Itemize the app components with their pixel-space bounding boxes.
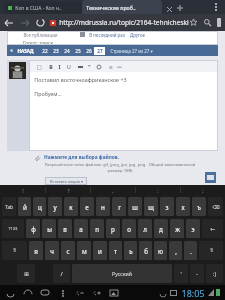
button[interactable]: More xyxy=(58,288,68,298)
button[interactable]: - xyxy=(190,264,204,283)
button[interactable]: о xyxy=(122,219,136,238)
button[interactable]: Menu xyxy=(209,0,223,14)
button[interactable]: : xyxy=(136,185,180,195)
staticText: о xyxy=(127,225,131,233)
staticText: . xyxy=(190,247,192,255)
button[interactable]: н xyxy=(96,197,110,216)
button[interactable]: Back xyxy=(4,18,14,28)
button[interactable]: Reload xyxy=(36,18,45,27)
button[interactable]: Bookmark xyxy=(189,18,198,27)
button[interactable]: 22 xyxy=(39,48,50,54)
button[interactable]: НАЗАД xyxy=(17,48,34,54)
button[interactable]: Format xyxy=(85,62,94,71)
button[interactable]: Format xyxy=(46,62,55,71)
staticText: м xyxy=(82,247,87,255)
button[interactable]: ?123 xyxy=(2,219,24,238)
button[interactable]: New tab xyxy=(174,2,186,14)
button[interactable]: ь xyxy=(124,241,137,260)
button[interactable]: ш xyxy=(128,197,142,216)
button[interactable]: у xyxy=(48,197,62,216)
button[interactable]: Save xyxy=(217,18,221,27)
button[interactable]: Volume up xyxy=(91,287,102,298)
button[interactable]: Вставить медиа ▾ xyxy=(45,177,87,185)
button[interactable]: л xyxy=(138,219,152,238)
button[interactable]: м xyxy=(77,241,91,260)
button[interactable]: , xyxy=(169,241,182,260)
button[interactable]: Format xyxy=(106,62,115,71)
staticText: Вставить медиа ▾ xyxy=(50,179,83,184)
button[interactable]: Нажмите для выбора файлов. xyxy=(44,154,119,161)
button[interactable]: в xyxy=(58,219,72,238)
staticText: ❞ xyxy=(88,64,91,70)
staticText: ?123 xyxy=(8,226,18,232)
button[interactable]: Recents xyxy=(39,287,50,298)
button[interactable]: Shift right xyxy=(199,241,223,260)
button[interactable]: Format xyxy=(94,62,103,71)
button[interactable]: Settings xyxy=(17,264,35,283)
button[interactable]: Keyboard xyxy=(205,172,216,183)
button[interactable]: з xyxy=(160,197,174,216)
button[interactable]: ч xyxy=(45,241,59,260)
button[interactable]: Русский xyxy=(72,264,172,283)
button[interactable]: Format xyxy=(64,62,73,71)
button[interactable]: 25 xyxy=(72,48,83,54)
button[interactable]: ; xyxy=(181,185,225,195)
button[interactable]: х xyxy=(176,197,190,216)
button[interactable]: Search xyxy=(203,18,212,27)
button[interactable]: Format xyxy=(76,62,85,71)
button[interactable]: Screenshot xyxy=(108,287,119,298)
button[interactable]: , xyxy=(91,185,135,195)
button[interactable]: 26 xyxy=(83,48,94,54)
button[interactable]: Volume down xyxy=(74,287,85,298)
button[interactable]: ' xyxy=(174,264,188,283)
button[interactable]: а xyxy=(74,219,88,238)
button[interactable]: р xyxy=(106,219,120,238)
button[interactable]: д xyxy=(154,219,168,238)
button[interactable]: и xyxy=(93,241,107,260)
button[interactable]: . xyxy=(184,241,197,260)
button[interactable]: Format xyxy=(115,62,124,71)
button[interactable]: ? xyxy=(46,185,90,195)
button[interactable]: б xyxy=(139,241,152,260)
button[interactable]: Forward xyxy=(20,18,30,28)
button[interactable]: Коп в США - Коп н.. xyxy=(4,2,82,14)
button[interactable]: с xyxy=(61,241,75,260)
button[interactable]: Format xyxy=(55,62,64,71)
button[interactable]: Close tab xyxy=(164,4,174,14)
button[interactable]: Технические проб.. xyxy=(82,0,162,14)
button[interactable]: :) xyxy=(206,264,223,283)
button[interactable]: ж xyxy=(170,219,184,238)
button[interactable]: 24 xyxy=(61,48,72,54)
button[interactable]: п xyxy=(90,219,104,238)
button[interactable]: Enter xyxy=(202,219,223,238)
button[interactable]: ф xyxy=(26,219,40,238)
button[interactable]: ю xyxy=(154,241,167,260)
staticText: http://mdrussia.ru/topic/2164-tehnichesk… xyxy=(59,18,189,27)
button[interactable]: Home xyxy=(22,287,33,298)
button[interactable]: е xyxy=(80,197,94,216)
button[interactable]: э xyxy=(186,219,200,238)
button[interactable]: Shift xyxy=(2,241,27,260)
button[interactable]: й xyxy=(18,197,31,216)
button[interactable]: ц xyxy=(33,197,46,216)
button[interactable]: Format xyxy=(34,62,43,71)
button[interactable]: / xyxy=(53,264,70,283)
button[interactable]: 27 xyxy=(94,47,105,55)
button[interactable]: ъ xyxy=(192,197,206,216)
button[interactable]: Tab xyxy=(2,197,16,216)
staticText: Русский xyxy=(112,270,132,277)
button[interactable]: т xyxy=(109,241,122,260)
staticText: у xyxy=(53,203,57,211)
staticText: 18:05 xyxy=(181,287,205,299)
button[interactable]: Backspace xyxy=(208,197,223,216)
button[interactable]: к xyxy=(64,197,78,216)
staticText: ф xyxy=(31,225,36,233)
button[interactable]: ! xyxy=(0,185,45,195)
button[interactable]: г xyxy=(112,197,126,216)
button[interactable]: ы xyxy=(42,219,56,238)
staticText: В последний раз xyxy=(89,32,125,38)
button[interactable]: 23 xyxy=(50,48,61,54)
button[interactable]: я xyxy=(29,241,43,260)
button[interactable]: Hide keyboard xyxy=(5,287,16,298)
button[interactable]: щ xyxy=(144,197,158,216)
